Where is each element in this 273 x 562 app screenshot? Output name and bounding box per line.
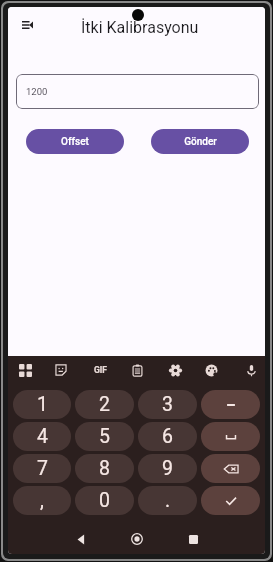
button[interactable]: Stickers	[46, 356, 76, 384]
staticText: 5	[99, 425, 110, 448]
staticText: 4	[37, 425, 48, 448]
button[interactable]: Themes	[196, 356, 226, 384]
button[interactable]: Apps	[10, 356, 40, 384]
button[interactable]: 3	[138, 390, 197, 419]
button[interactable]: 1200	[16, 74, 259, 109]
staticText: ,	[40, 489, 44, 512]
button[interactable]: Clipboard	[122, 356, 152, 384]
button[interactable]: 5	[75, 422, 134, 451]
button[interactable]: 4	[13, 422, 71, 451]
button[interactable]	[201, 422, 260, 451]
button[interactable]: .	[138, 486, 197, 515]
button[interactable]: Menu	[13, 11, 41, 39]
button[interactable]: Home	[109, 524, 165, 554]
staticText: 0	[99, 489, 110, 512]
staticText: 7	[37, 457, 48, 480]
button[interactable]: Back	[53, 524, 109, 554]
staticText: GIF	[94, 365, 107, 375]
button[interactable]: ,	[13, 486, 71, 515]
button[interactable]: Recents	[165, 524, 221, 554]
staticText: 1	[37, 393, 48, 416]
staticText: .	[165, 489, 171, 512]
button[interactable]: 9	[138, 454, 197, 483]
button[interactable]	[201, 390, 260, 419]
button[interactable]: 8	[75, 454, 134, 483]
button[interactable]: Gönder	[151, 129, 249, 154]
button[interactable]: GIF	[85, 356, 115, 384]
button[interactable]	[201, 454, 260, 483]
button[interactable]: 6	[138, 422, 197, 451]
button[interactable]: Offset	[26, 129, 124, 154]
button[interactable]: 7	[13, 454, 71, 483]
staticText: 3	[162, 393, 173, 416]
staticText: 2	[99, 393, 110, 416]
button[interactable]: 1	[13, 390, 71, 419]
button[interactable]	[201, 486, 260, 515]
button[interactable]: Settings	[160, 356, 190, 384]
button[interactable]: 2	[75, 390, 134, 419]
staticText: 6	[162, 425, 173, 448]
staticText: Gönder	[184, 136, 217, 148]
button[interactable]: Voice input	[236, 356, 265, 384]
button[interactable]: 0	[75, 486, 134, 515]
staticText: 9	[162, 457, 173, 480]
staticText: İtki Kalibrasyonu	[81, 18, 199, 37]
staticText: Offset	[61, 136, 89, 148]
staticText: 8	[99, 457, 110, 480]
staticText: 1200	[26, 86, 48, 97]
